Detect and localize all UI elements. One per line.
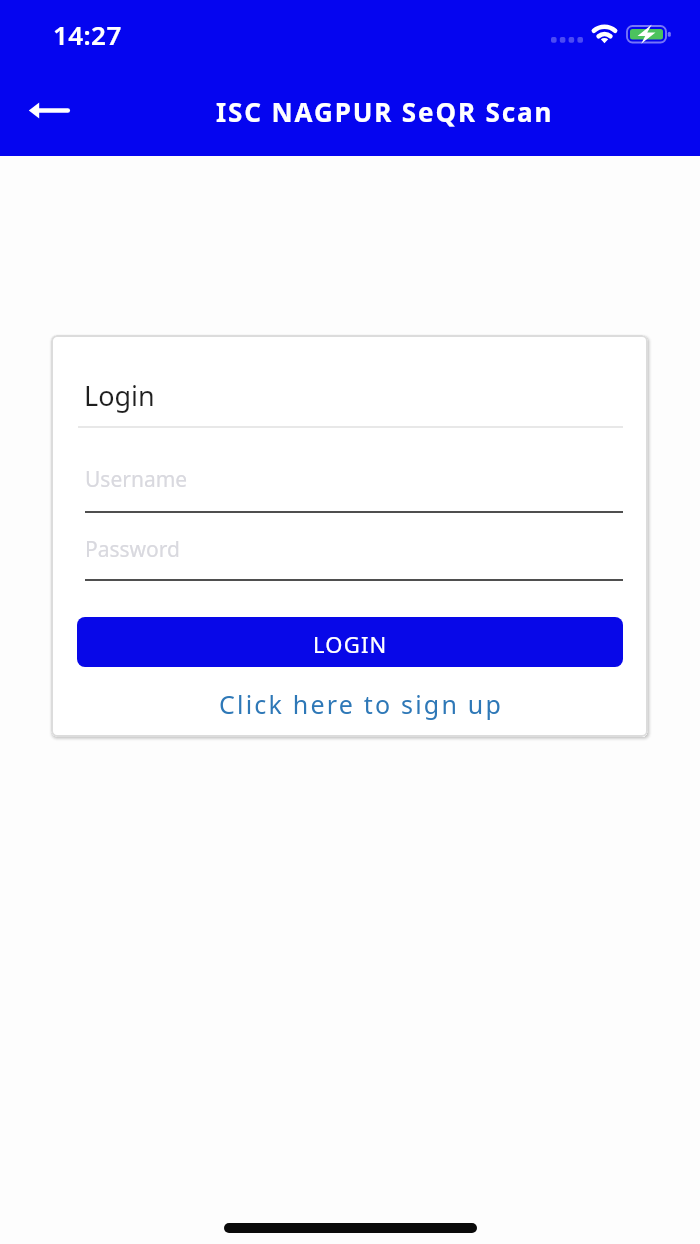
staticText: 14:27 xyxy=(53,17,122,52)
button[interactable]: LOGIN xyxy=(77,617,623,667)
staticText: Password xyxy=(85,535,180,564)
staticText: Login xyxy=(84,377,155,414)
staticText: Username xyxy=(85,465,188,494)
staticText: ISC NAGPUR SeQR Scan xyxy=(216,94,554,129)
staticText: LOGIN xyxy=(313,629,388,659)
button[interactable]: Click here to sign up xyxy=(219,687,503,721)
button[interactable] xyxy=(29,99,70,122)
